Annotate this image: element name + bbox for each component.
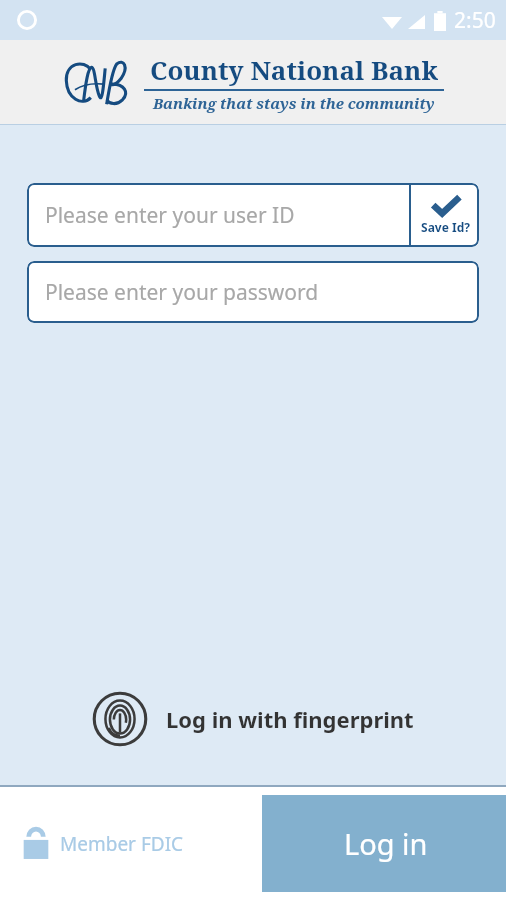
- button[interactable]: Please enter your password: [27, 261, 479, 323]
- button[interactable]: Log in: [262, 795, 506, 892]
- staticText: Member FDIC: [60, 831, 184, 857]
- staticText: Please enter your password: [45, 278, 319, 307]
- staticText: Log in with fingerprint: [166, 704, 414, 734]
- staticText: Banking that stays in the community: [153, 93, 435, 113]
- staticText: 2:50: [454, 6, 496, 35]
- staticText: Please enter your user ID: [45, 201, 295, 230]
- staticText: Save Id?: [421, 219, 470, 235]
- staticText: County National Bank: [150, 52, 438, 87]
- button[interactable]: Member FDIC: [22, 827, 184, 861]
- staticText: Log in: [344, 824, 428, 863]
- button[interactable]: Log in with fingerprint: [0, 691, 506, 747]
- button[interactable]: Please enter your user ID: [27, 185, 409, 245]
- button[interactable]: Save Id: [411, 185, 479, 245]
